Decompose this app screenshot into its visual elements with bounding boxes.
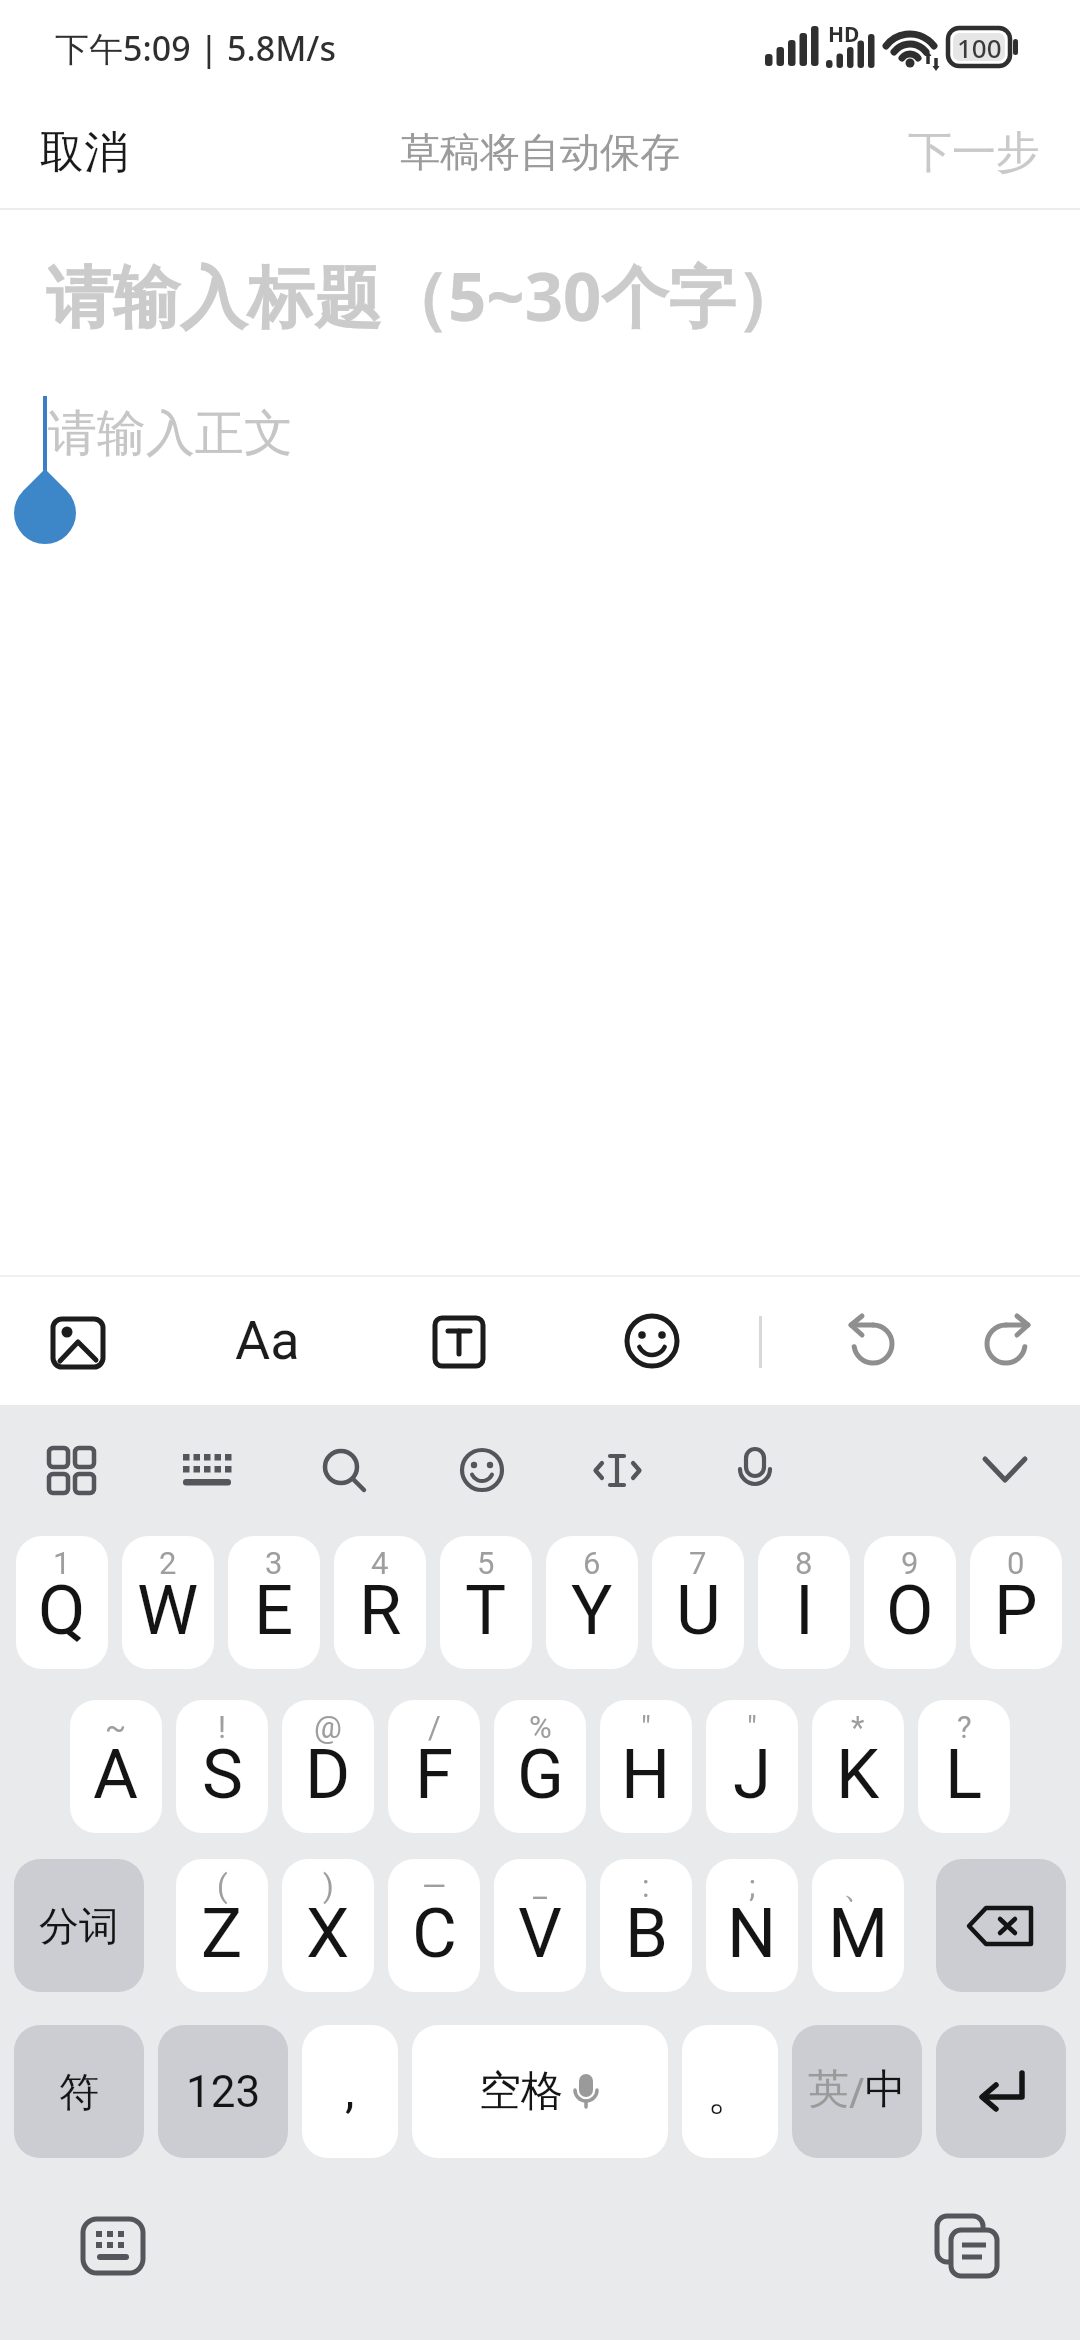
- button[interactable]: [982, 1455, 1028, 1486]
- button[interactable]: [840, 1315, 900, 1369]
- button[interactable]: 英: [792, 2025, 922, 2158]
- button[interactable]: [936, 2025, 1066, 2158]
- staticText: X: [306, 1893, 350, 1974]
- button[interactable]: [182, 1448, 232, 1493]
- button[interactable]: 分词: [14, 1859, 144, 1992]
- staticText: HD: [828, 20, 860, 46]
- staticText: ?: [957, 1709, 972, 1745]
- staticText: L: [945, 1734, 983, 1815]
- staticText: 4: [371, 1545, 389, 1581]
- staticText: 下一步: [908, 125, 1040, 180]
- staticText: O: [886, 1570, 934, 1651]
- button[interactable]: *: [812, 1700, 904, 1833]
- button[interactable]: [624, 1313, 680, 1369]
- button[interactable]: 3: [228, 1536, 320, 1669]
- button[interactable]: [80, 2216, 146, 2276]
- button[interactable]: 123: [158, 2025, 288, 2158]
- button[interactable]: [322, 1448, 368, 1494]
- staticText: ": [641, 1709, 651, 1745]
- staticText: /: [428, 1709, 441, 1745]
- staticText: 中: [865, 2064, 906, 2116]
- button[interactable]: ?: [918, 1700, 1010, 1833]
- button[interactable]: ): [282, 1859, 374, 1992]
- staticText: _: [533, 1868, 547, 1904]
- button[interactable]: [594, 1448, 641, 1493]
- button[interactable]: 。: [682, 2025, 778, 2158]
- button[interactable]: 6: [546, 1536, 638, 1669]
- button[interactable]: 7: [652, 1536, 744, 1669]
- staticText: ~: [105, 1709, 127, 1745]
- button[interactable]: !: [176, 1700, 268, 1833]
- staticText: 取消: [40, 125, 128, 180]
- staticText: 100: [957, 30, 1002, 65]
- staticText: 3: [265, 1545, 283, 1581]
- staticText: 、: [843, 1868, 874, 1907]
- button[interactable]: [936, 1859, 1066, 1992]
- button[interactable]: ~: [70, 1700, 162, 1833]
- button[interactable]: [433, 1316, 485, 1368]
- staticText: %: [529, 1709, 552, 1745]
- staticText: 1: [53, 1545, 71, 1581]
- button[interactable]: [979, 1315, 1039, 1369]
- button[interactable]: 4: [334, 1536, 426, 1669]
- staticText: U: [676, 1570, 721, 1651]
- button[interactable]: /: [388, 1700, 480, 1833]
- staticText: 请输入标题（5~30个字）: [46, 249, 803, 341]
- staticText: M: [828, 1893, 889, 1974]
- button[interactable]: 、: [812, 1859, 904, 1992]
- staticText: 123: [186, 2066, 261, 2118]
- button[interactable]: [460, 1448, 505, 1493]
- staticText: (: [217, 1868, 228, 1904]
- button[interactable]: [935, 2214, 999, 2278]
- staticText: 分词: [39, 1901, 119, 1951]
- staticText: Z: [201, 1893, 243, 1974]
- staticText: E: [254, 1570, 294, 1651]
- staticText: D: [305, 1734, 351, 1815]
- staticText: :: [642, 1868, 650, 1904]
- button[interactable]: %: [494, 1700, 586, 1833]
- staticText: A: [93, 1734, 139, 1815]
- button[interactable]: 9: [864, 1536, 956, 1669]
- button[interactable]: ": [600, 1700, 692, 1833]
- staticText: K: [836, 1734, 880, 1815]
- button[interactable]: (: [176, 1859, 268, 1992]
- staticText: 8: [795, 1545, 813, 1581]
- staticText: 空格: [479, 2065, 563, 2118]
- button[interactable]: 空格: [412, 2025, 668, 2158]
- button[interactable]: ,: [302, 2025, 398, 2158]
- button[interactable]: ": [706, 1700, 798, 1833]
- button[interactable]: 5: [440, 1536, 532, 1669]
- staticText: T: [465, 1570, 507, 1651]
- button[interactable]: 下一步: [880, 95, 1040, 209]
- staticText: 请输入正文: [48, 403, 293, 465]
- button[interactable]: —: [388, 1859, 480, 1992]
- button[interactable]: 1: [16, 1536, 108, 1669]
- button[interactable]: :: [600, 1859, 692, 1992]
- staticText: 下午5:09 | 5.8M/s: [55, 25, 336, 71]
- staticText: C: [412, 1893, 457, 1974]
- button[interactable]: 取消: [40, 95, 160, 209]
- staticText: 5: [477, 1545, 495, 1581]
- staticText: ": [747, 1709, 757, 1745]
- button[interactable]: _: [494, 1859, 586, 1992]
- button[interactable]: @: [282, 1700, 374, 1833]
- button[interactable]: 符: [14, 2025, 144, 2158]
- staticText: 英: [808, 2064, 849, 2116]
- staticText: 。: [707, 2065, 753, 2123]
- staticText: G: [517, 1734, 564, 1815]
- staticText: *: [851, 1709, 865, 1745]
- staticText: I: [795, 1570, 814, 1651]
- button[interactable]: [51, 1316, 105, 1370]
- button[interactable]: 8: [758, 1536, 850, 1669]
- button[interactable]: Aa: [222, 1295, 312, 1385]
- button[interactable]: [733, 1447, 777, 1495]
- staticText: 符: [59, 2067, 99, 2117]
- staticText: ): [323, 1868, 334, 1904]
- button[interactable]: [49, 1448, 94, 1493]
- button[interactable]: 0: [970, 1536, 1062, 1669]
- button[interactable]: 2: [122, 1536, 214, 1669]
- staticText: Aa: [235, 1309, 300, 1372]
- staticText: H: [621, 1734, 671, 1815]
- button[interactable]: ;: [706, 1859, 798, 1992]
- staticText: P: [994, 1570, 1038, 1651]
